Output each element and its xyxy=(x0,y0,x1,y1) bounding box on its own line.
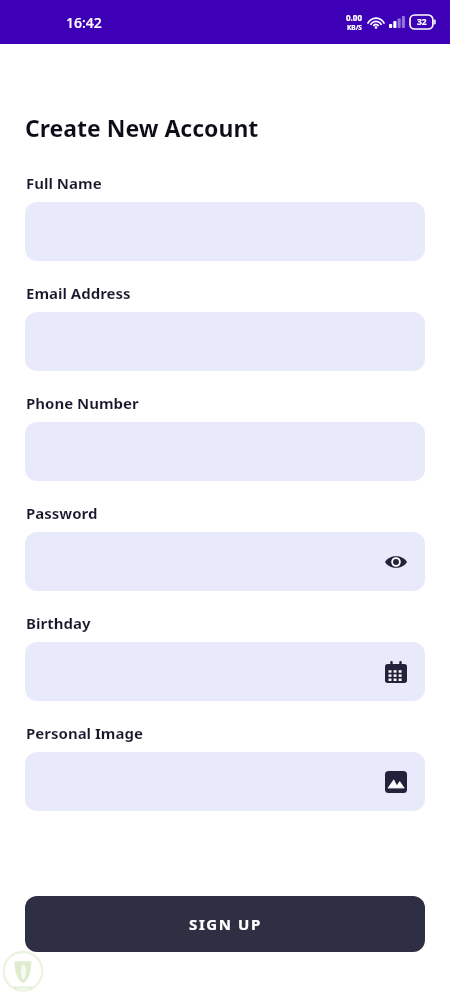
staticText: Create New Account xyxy=(25,112,259,143)
staticText: Email Address xyxy=(26,283,131,303)
staticText: Full Name xyxy=(26,173,102,193)
button[interactable]: Show password xyxy=(379,545,413,579)
staticText: Birthday xyxy=(26,613,91,633)
staticText: Phone Number xyxy=(26,393,139,413)
staticText: KB/S xyxy=(347,23,362,32)
button[interactable]: Show password xyxy=(25,532,425,591)
staticText: Personal Image xyxy=(26,723,143,743)
staticText: 32 xyxy=(417,16,427,28)
staticText: 16:42 xyxy=(66,13,102,32)
button[interactable]: Choose image xyxy=(379,765,413,799)
button[interactable]: Pick date xyxy=(25,642,425,701)
button[interactable]: SIGN UP xyxy=(25,896,425,952)
button[interactable]: Pick date xyxy=(379,655,413,689)
staticText: 0.00 xyxy=(346,12,362,23)
button[interactable]: Choose image xyxy=(25,752,425,811)
staticText: SIGN UP xyxy=(189,914,262,934)
staticText: Password xyxy=(26,503,98,523)
